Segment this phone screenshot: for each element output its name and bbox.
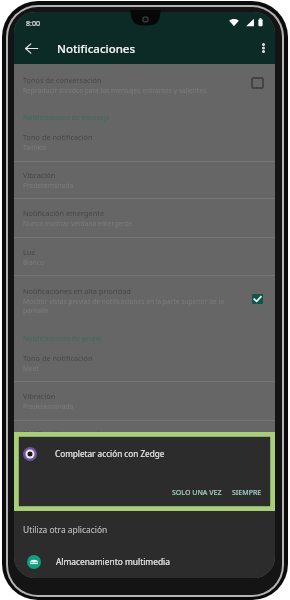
staticText: Notificación emergente [23, 208, 105, 218]
button[interactable]: Notificaciones en alta prioridad [14, 282, 275, 322]
staticText: SOLO UNA VEZ [172, 488, 222, 498]
staticText: Tonos de conversación [23, 75, 102, 85]
button[interactable]: Back [20, 37, 42, 59]
staticText: Mostrar vistas previas de notificaciones… [23, 297, 224, 306]
staticText: Vibración [23, 391, 56, 401]
staticText: Nunca mostrar ventana emergente [23, 439, 133, 448]
staticText: 8:00 [26, 19, 40, 29]
staticText: Utiliza otra aplicación [23, 524, 108, 535]
button[interactable]: SOLO UNA VEZ [170, 487, 224, 499]
button[interactable]: Tonos de conversación [14, 71, 275, 99]
staticText: Notificaciones de grupo [23, 334, 102, 343]
staticText: Predeterminada [23, 402, 74, 411]
button[interactable]: Almacenamiento multimedia [14, 548, 275, 575]
staticText: Tono de notificación [23, 353, 93, 363]
staticText: Tono de notificación [23, 132, 93, 142]
staticText: Completar acción con Zedge [55, 448, 165, 459]
staticText: Notificaciones [57, 41, 136, 57]
button[interactable]: Notificación emergente [14, 204, 275, 232]
button[interactable]: Notificación emergente [14, 424, 275, 452]
staticText: Meet [23, 364, 39, 373]
staticText: Reproducir sonidos para los mensajes ent… [23, 86, 208, 95]
staticText: Luz [23, 247, 35, 257]
staticText: SIEMPRE [232, 488, 262, 498]
staticText: pantalla [23, 306, 49, 315]
button[interactable]: SIEMPRE [230, 487, 264, 499]
staticText: Blanco [23, 258, 44, 267]
staticText: Predeterminada [23, 181, 74, 190]
staticText: Almacenamiento multimedia [56, 556, 170, 567]
button[interactable]: Completar acción con Zedge [14, 432, 275, 511]
button[interactable]: More options [253, 38, 273, 58]
staticText: Twinkle [23, 143, 47, 152]
staticText: Notificaciones en alta prioridad [23, 286, 131, 296]
staticText: Notificación emergente [23, 428, 105, 438]
staticText: Vibración [23, 170, 56, 180]
staticText: Notificaciones de mensaje [23, 113, 110, 122]
staticText: Nunca mostrar ventana emergente [23, 219, 133, 228]
